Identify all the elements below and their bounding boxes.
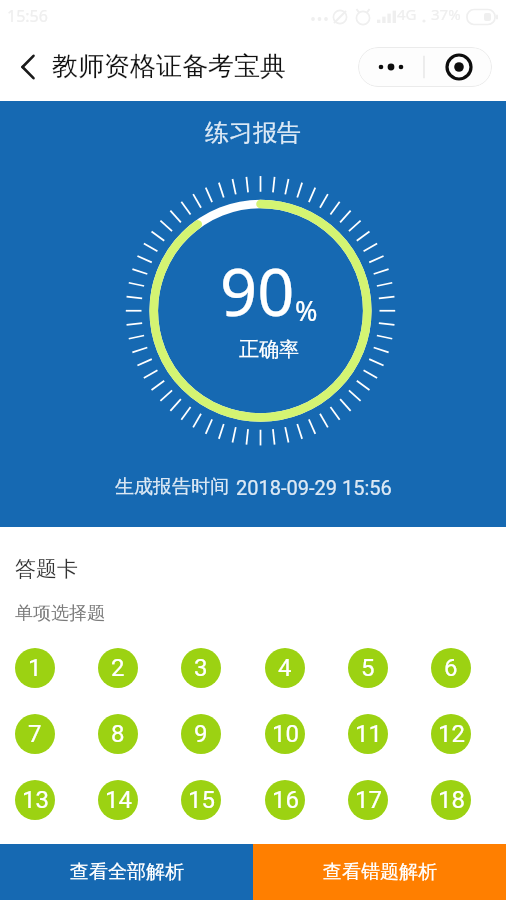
button[interactable]: 18: [431, 780, 471, 820]
staticText: 单项选择题: [15, 602, 105, 625]
staticText: 6: [444, 654, 458, 682]
button[interactable]: 10: [265, 714, 305, 754]
staticText: 2018-09-29 15:56: [236, 476, 392, 499]
button[interactable]: 查看错题解析: [253, 844, 506, 900]
staticText: 15: [188, 786, 215, 814]
button[interactable]: 1: [15, 648, 55, 688]
button[interactable]: 7: [15, 714, 55, 754]
staticText: 16: [272, 786, 299, 814]
staticText: 5: [361, 654, 375, 682]
staticText: 教师资格证备考宝典: [52, 50, 286, 83]
button[interactable]: 5: [348, 648, 388, 688]
button[interactable]: 8: [98, 714, 138, 754]
button[interactable]: 14: [98, 780, 138, 820]
staticText: 2: [111, 654, 125, 682]
staticText: 查看全部解析: [70, 860, 184, 884]
staticText: 生成报告时间: [115, 475, 229, 499]
staticText: 11: [355, 720, 382, 748]
staticText: 37%: [431, 4, 461, 24]
button[interactable]: 17: [348, 780, 388, 820]
staticText: 4: [278, 654, 292, 682]
staticText: 查看错题解析: [323, 860, 437, 884]
button[interactable]: 4: [265, 648, 305, 688]
button[interactable]: 13: [15, 780, 55, 820]
staticText: 1: [28, 654, 42, 682]
button[interactable]: 11: [348, 714, 388, 754]
button[interactable]: 16: [265, 780, 305, 820]
staticText: 练习报告: [205, 118, 301, 148]
button[interactable]: 查看全部解析: [0, 844, 253, 900]
button[interactable]: 2: [98, 648, 138, 688]
staticText: 4G: [397, 4, 417, 24]
staticText: 13: [22, 786, 49, 814]
staticText: 14: [105, 786, 132, 814]
staticText: 10: [272, 720, 299, 748]
staticText: 90: [220, 247, 295, 336]
button[interactable]: Back: [13, 52, 43, 82]
staticText: 答题卡: [15, 556, 78, 582]
button[interactable]: Close mini program: [425, 47, 492, 87]
button[interactable]: 6: [431, 648, 471, 688]
button[interactable]: 9: [181, 714, 221, 754]
staticText: 3: [194, 654, 208, 682]
button[interactable]: 15: [181, 780, 221, 820]
staticText: %: [295, 292, 318, 329]
button[interactable]: More options: [358, 47, 424, 87]
staticText: 正确率: [239, 337, 299, 362]
staticText: 18: [438, 786, 465, 814]
staticText: 8: [111, 720, 125, 748]
button[interactable]: 12: [431, 714, 471, 754]
staticText: 12: [438, 720, 465, 748]
staticText: 15:56: [7, 5, 48, 27]
button[interactable]: 3: [181, 648, 221, 688]
staticText: 9: [194, 720, 208, 748]
staticText: 17: [355, 786, 382, 814]
staticText: 7: [28, 720, 42, 748]
